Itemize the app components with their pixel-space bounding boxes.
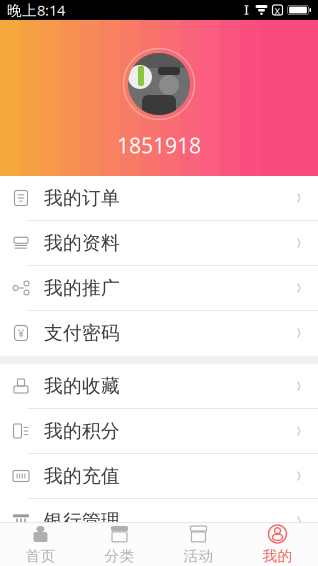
button[interactable]: 我的资料 [0, 221, 318, 266]
staticText: x [274, 3, 280, 17]
button[interactable]: 分类 [80, 523, 159, 566]
button[interactable]: 我的推广 [0, 266, 318, 311]
staticText: 1851918 [117, 131, 201, 159]
button[interactable]: ¥ [0, 311, 318, 356]
staticText: 活动 [183, 547, 213, 565]
staticText: 我的订单 [44, 186, 120, 209]
button[interactable]: 活动 [159, 523, 238, 566]
staticText: 我的收藏 [44, 374, 120, 397]
staticText: 晚上8:14 [7, 0, 65, 20]
staticText: 我的 [262, 547, 292, 565]
staticText: 我的积分 [44, 419, 120, 442]
staticText: 我的充值 [44, 464, 120, 487]
staticText: 银行管理 [44, 509, 120, 532]
button[interactable]: 我的订单 [0, 176, 318, 221]
button[interactable]: 我的充值 [0, 454, 318, 499]
button[interactable]: 银行管理 [0, 499, 318, 544]
button[interactable]: 我的收藏 [0, 364, 318, 409]
staticText: ¥ [18, 326, 24, 340]
button[interactable]: 我的积分 [0, 409, 318, 454]
staticText: 首页 [25, 547, 55, 565]
staticText: 我的资料 [44, 231, 120, 254]
button[interactable]: 我的 [238, 523, 317, 566]
staticText: 支付密码 [44, 321, 120, 344]
staticText: 分类 [104, 547, 134, 565]
staticText: 我的推广 [44, 276, 120, 299]
button[interactable]: 首页 [1, 523, 80, 566]
